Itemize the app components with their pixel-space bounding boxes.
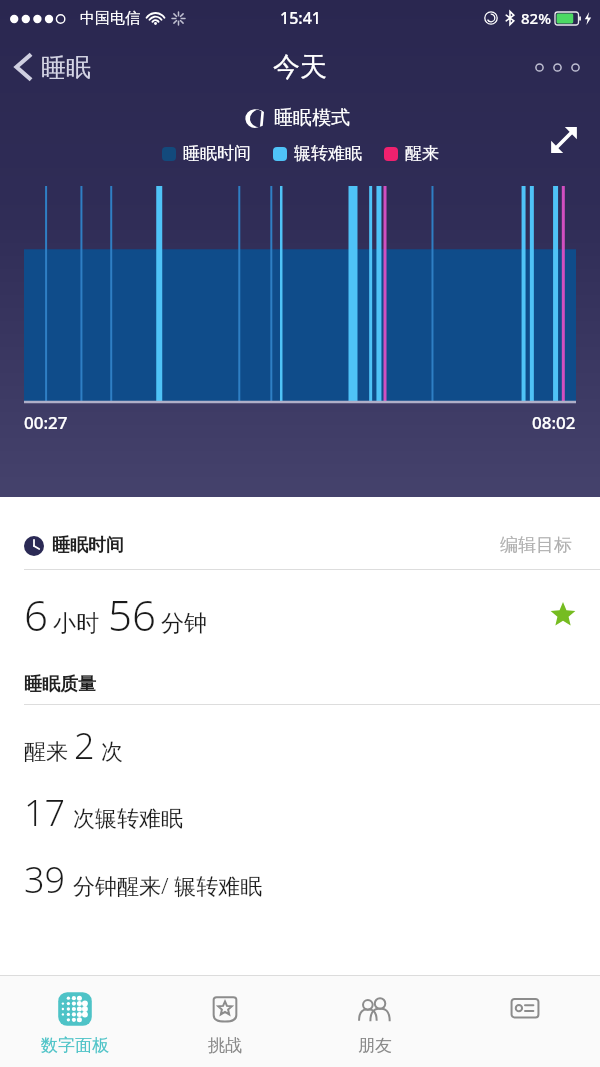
- button[interactable]: 数字面板: [0, 976, 150, 1067]
- button[interactable]: 编辑目标: [496, 530, 576, 561]
- staticText: 次: [101, 738, 123, 766]
- staticText: 醒来: [405, 143, 439, 164]
- staticText: 睡眠质量: [24, 673, 96, 696]
- staticText: 6: [24, 586, 48, 643]
- staticText: 数字面板: [41, 1035, 109, 1056]
- staticText: 17: [24, 788, 66, 837]
- staticText: 睡眠: [41, 52, 91, 83]
- button[interactable]: More options: [515, 36, 600, 98]
- button[interactable]: 挑战: [150, 976, 300, 1067]
- staticText: 00:27: [24, 411, 68, 434]
- staticText: 15:41: [280, 7, 321, 29]
- staticText: 82%: [521, 8, 551, 28]
- staticText: 朋友: [358, 1035, 392, 1056]
- staticText: 分钟醒来/ 辗转难眠: [73, 870, 263, 900]
- staticText: 56: [108, 586, 156, 643]
- staticText: 小时: [53, 609, 99, 638]
- button[interactable]: News feed: [450, 976, 600, 1067]
- staticText: 醒来: [24, 738, 68, 766]
- button[interactable]: Expand chart: [540, 116, 588, 164]
- staticText: 今天: [273, 50, 327, 84]
- staticText: 39: [24, 855, 66, 904]
- staticText: 2: [74, 721, 95, 770]
- staticText: 08:02: [532, 411, 576, 434]
- staticText: 分钟: [161, 609, 207, 638]
- staticText: 次辗转难眠: [73, 805, 183, 833]
- staticText: 睡眠模式: [274, 106, 350, 130]
- staticText: 编辑目标: [500, 534, 572, 557]
- button[interactable]: 朋友: [300, 976, 450, 1067]
- staticText: 睡眠时间: [183, 143, 251, 164]
- staticText: 中国电信: [80, 9, 140, 28]
- staticText: 辗转难眠: [294, 143, 362, 164]
- staticText: 睡眠时间: [52, 534, 124, 557]
- button[interactable]: 睡眠: [0, 36, 105, 98]
- staticText: 挑战: [208, 1035, 242, 1056]
